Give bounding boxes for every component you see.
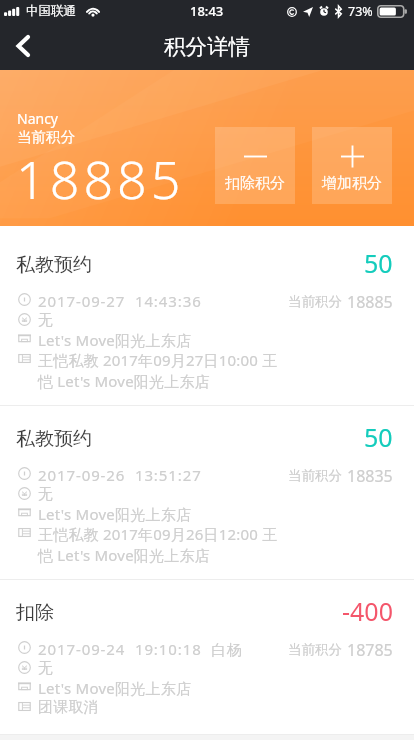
staticText: 18835 — [347, 465, 393, 485]
staticText: 私教预约 — [16, 253, 92, 277]
staticText: 无 — [38, 485, 53, 504]
staticText: 无 — [38, 659, 53, 678]
button[interactable]: 扣除 — [0, 580, 414, 734]
staticText: 2017-09-24 19:10:18 白杨 — [38, 639, 244, 659]
staticText: 增加积分 — [322, 174, 382, 193]
staticText: 王恺私教 2017年09月27日10:00 王恺 Let's Move阳光上东店 — [38, 350, 284, 391]
staticText: 当前积分 — [17, 128, 75, 146]
staticText: Let's Move阳光上东店 — [38, 504, 192, 524]
staticText: Nancy — [17, 109, 59, 128]
staticText: 无 — [38, 311, 53, 330]
button[interactable]: 私教预约 — [0, 226, 414, 405]
staticText: 18:43 — [190, 2, 224, 20]
staticText: 私教预约 — [16, 427, 92, 451]
staticText: 50 — [364, 420, 393, 448]
button[interactable]: 增加积分 — [312, 127, 392, 204]
staticText: 18885 — [16, 143, 185, 214]
staticText: Let's Move阳光上东店 — [38, 678, 192, 698]
staticText: 50 — [364, 246, 393, 274]
button[interactable]: 私教预约 — [0, 406, 414, 579]
button[interactable]: Back — [0, 22, 46, 70]
button[interactable]: 扣除积分 — [215, 127, 295, 204]
staticText: 73% — [348, 3, 373, 20]
staticText: 积分详情 — [164, 33, 250, 60]
staticText: 18785 — [347, 639, 393, 659]
staticText: 2017-09-26 13:51:27 — [38, 465, 202, 485]
staticText: 2017-09-27 14:43:36 — [38, 291, 202, 311]
staticText: 当前积分 — [288, 467, 342, 484]
staticText: 当前积分 — [288, 293, 342, 310]
staticText: Let's Move阳光上东店 — [38, 330, 192, 350]
staticText: 当前积分 — [288, 641, 342, 658]
staticText: 中国联通 — [26, 3, 76, 19]
staticText: 18885 — [347, 291, 393, 311]
staticText: 王恺私教 2017年09月26日12:00 王恺 Let's Move阳光上东店 — [38, 524, 284, 565]
staticText: 扣除积分 — [225, 174, 285, 193]
staticText: 团课取消 — [38, 698, 99, 717]
staticText: 扣除 — [16, 601, 54, 625]
staticText: -400 — [342, 594, 393, 622]
